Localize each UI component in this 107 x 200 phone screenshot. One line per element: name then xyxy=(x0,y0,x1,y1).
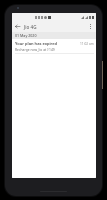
staticText: 11:02 am xyxy=(80,42,94,46)
staticText: Your plan has expired xyxy=(15,41,58,46)
staticText: Jio 4G xyxy=(24,24,37,30)
button[interactable]: More options xyxy=(86,22,95,31)
button[interactable]: Back xyxy=(13,22,22,31)
button[interactable]: Your plan has expired xyxy=(12,39,96,56)
staticText: 01 May 2020 xyxy=(15,33,37,38)
staticText: Recharge now, Jio at ₹149 xyxy=(15,47,55,51)
